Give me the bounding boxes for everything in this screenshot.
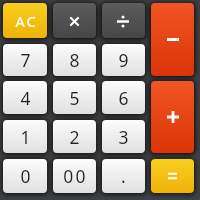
staticText: 4 xyxy=(20,86,33,110)
button[interactable]: AC xyxy=(3,3,47,38)
button[interactable]: 4 xyxy=(3,81,47,114)
staticText: 0 xyxy=(20,164,33,188)
button[interactable]: Plus xyxy=(151,81,194,153)
button[interactable]: 2 xyxy=(53,120,96,153)
staticText: 7 xyxy=(20,48,33,72)
button[interactable]: 3 xyxy=(102,120,145,153)
button[interactable]: 1 xyxy=(3,120,47,153)
staticText: 5 xyxy=(69,86,82,110)
button[interactable]: 9 xyxy=(102,44,145,76)
button[interactable]: 6 xyxy=(102,81,145,114)
staticText: 3 xyxy=(118,125,131,149)
staticText: 00 xyxy=(63,164,88,188)
button[interactable]: Equals xyxy=(151,159,194,193)
staticText: AC xyxy=(15,11,38,31)
staticText: 8 xyxy=(69,48,82,72)
button[interactable]: Minus xyxy=(151,3,194,76)
staticText: 2 xyxy=(69,125,82,149)
button[interactable]: 0 xyxy=(3,159,47,193)
button[interactable]: 8 xyxy=(53,44,96,76)
staticText: 1 xyxy=(20,125,33,149)
staticText: . xyxy=(121,164,128,188)
staticText: 9 xyxy=(118,48,131,72)
button[interactable]: . xyxy=(102,159,145,193)
button[interactable]: 5 xyxy=(53,81,96,114)
button[interactable]: 00 xyxy=(53,159,96,193)
button[interactable]: 7 xyxy=(3,44,47,76)
button[interactable]: Divide xyxy=(102,3,145,38)
staticText: 6 xyxy=(118,86,131,110)
button[interactable]: Multiply xyxy=(53,3,96,38)
